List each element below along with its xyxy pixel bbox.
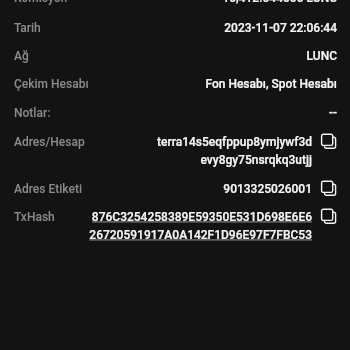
staticText: Çekim Hesabı — [14, 77, 89, 91]
button[interactable]: Adres/Hesap — [0, 135, 350, 163]
button[interactable]: Kopyala — [321, 208, 337, 224]
staticText: 2023-11-07 22:06:44 — [224, 21, 337, 35]
staticText: Adres Etiketi — [14, 182, 83, 196]
staticText: 26720591917A0A142F1D96E97F7FBC53 — [89, 228, 312, 242]
staticText: Tarih — [14, 21, 41, 35]
staticText: Fon Hesabı, Spot Hesabı — [205, 77, 337, 91]
button[interactable]: Komisyon — [0, 0, 350, 5]
button[interactable]: Ağ — [0, 49, 350, 63]
staticText: Notlar: — [14, 106, 51, 120]
button[interactable]: Adres Etiketi — [0, 182, 350, 198]
staticText: 9013325026001 — [223, 182, 312, 196]
button[interactable]: Çekim Hesabı — [0, 77, 350, 91]
staticText: Komisyon — [14, 0, 68, 5]
button[interactable]: Kopyala — [321, 180, 337, 196]
staticText: Ağ — [14, 49, 29, 63]
staticText: 10,412.044000 LUNC — [222, 0, 337, 5]
staticText: Adres/Hesap — [14, 135, 85, 149]
staticText: evy8gy75nsrqkq3utjj — [200, 153, 312, 167]
staticText: 876C3254258389E59350E531D698E6E6 — [91, 210, 312, 224]
button[interactable]: TxHash — [0, 210, 350, 238]
button[interactable]: Tarih — [0, 21, 350, 35]
staticText: TxHash — [14, 210, 55, 224]
button[interactable]: Notlar: — [0, 106, 350, 120]
staticText: -- — [329, 106, 337, 120]
staticText: terra14s5eqfppup8ymjywf3d — [156, 135, 312, 149]
staticText: LUNC — [306, 49, 337, 63]
button[interactable]: Kopyala — [321, 133, 337, 149]
